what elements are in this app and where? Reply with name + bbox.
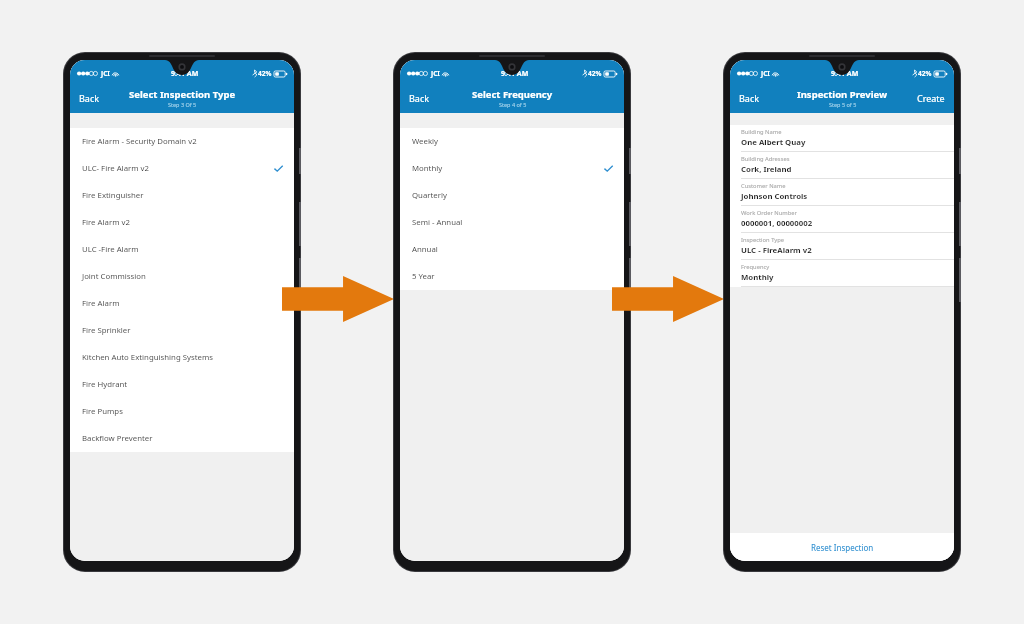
- staticText: Building Name: [741, 128, 782, 136]
- staticText: Fire Hydrant: [82, 379, 128, 390]
- button[interactable]: ULC -Fire Alarm: [70, 236, 294, 263]
- button[interactable]: 5 Year: [400, 263, 624, 290]
- staticText: 42%: [918, 69, 932, 78]
- button[interactable]: Fire Pumps: [70, 398, 294, 425]
- button[interactable]: Fire Extinguisher: [70, 182, 294, 209]
- staticText: Fire Alarm: [82, 298, 120, 309]
- staticText: Reset Inspection: [811, 542, 874, 553]
- button[interactable]: Weekly: [400, 128, 624, 155]
- button[interactable]: Kitchen Auto Extinguishing Systems: [70, 344, 294, 371]
- button[interactable]: Fire Alarm - Security Domain v2: [70, 128, 294, 155]
- staticText: Step 3 Of 5: [168, 101, 197, 108]
- staticText: ULC- Fire Alarm v2: [82, 163, 149, 174]
- button[interactable]: Building Name: [730, 125, 954, 152]
- staticText: JCI: [431, 69, 440, 78]
- staticText: ULC -Fire Alarm: [82, 244, 139, 255]
- staticText: Johnson Controls: [741, 191, 808, 202]
- staticText: Kitchen Auto Extinguishing Systems: [82, 352, 213, 363]
- staticText: Fire Alarm - Security Domain v2: [82, 136, 197, 147]
- staticText: Quarterly: [412, 190, 447, 201]
- staticText: Frequency: [741, 263, 770, 271]
- button[interactable]: Inspection Type: [730, 233, 954, 260]
- staticText: ULC - FireAlarm v2: [741, 245, 812, 256]
- button[interactable]: Fire Alarm: [70, 290, 294, 317]
- button[interactable]: Reset Inspection: [730, 533, 954, 561]
- button[interactable]: Back: [70, 88, 108, 108]
- button[interactable]: Customer Name: [730, 179, 954, 206]
- staticText: Building Adresses: [741, 155, 790, 163]
- staticText: One Albert Quay: [741, 137, 806, 148]
- button[interactable]: Monthly: [400, 155, 624, 182]
- button[interactable]: Frequency: [730, 260, 954, 287]
- staticText: Backflow Preventer: [82, 433, 153, 444]
- staticText: 42%: [258, 69, 272, 78]
- button[interactable]: Back: [730, 88, 768, 108]
- button[interactable]: Annual: [400, 236, 624, 263]
- staticText: 9:41 AM: [171, 69, 199, 79]
- staticText: Fire Pumps: [82, 406, 123, 417]
- staticText: Monthly: [741, 272, 774, 283]
- button[interactable]: Semi - Annual: [400, 209, 624, 236]
- staticText: 42%: [588, 69, 602, 78]
- button[interactable]: Backflow Preventer: [70, 425, 294, 452]
- staticText: 9:41 AM: [831, 69, 859, 79]
- staticText: Fire Alarm v2: [82, 217, 130, 228]
- button[interactable]: Joint Commission: [70, 263, 294, 290]
- staticText: Back: [739, 92, 760, 104]
- staticText: JCI: [761, 69, 770, 78]
- staticText: Back: [409, 92, 430, 104]
- staticText: Inspection Type: [741, 236, 785, 244]
- staticText: Semi - Annual: [412, 217, 463, 228]
- staticText: Fire Sprinkler: [82, 325, 131, 336]
- staticText: 9:41 AM: [501, 69, 529, 79]
- button[interactable]: Building Adresses: [730, 152, 954, 179]
- staticText: Work Order Number: [741, 209, 797, 217]
- button[interactable]: Create: [909, 88, 954, 108]
- staticText: Cork, Ireland: [741, 164, 792, 175]
- staticText: Select Inspection Type: [129, 88, 236, 101]
- staticText: Weekly: [412, 136, 439, 147]
- staticText: Back: [79, 92, 100, 104]
- staticText: Customer Name: [741, 182, 786, 190]
- staticText: Joint Commission: [82, 271, 146, 282]
- button[interactable]: Fire Alarm v2: [70, 209, 294, 236]
- staticText: 0000001, 00000002: [741, 218, 813, 229]
- staticText: Select Frequency: [472, 88, 553, 101]
- staticText: Step 4 of 5: [499, 101, 527, 108]
- staticText: Annual: [412, 244, 438, 255]
- staticText: 5 Year: [412, 271, 435, 282]
- staticText: Fire Extinguisher: [82, 190, 144, 201]
- button[interactable]: Back: [400, 88, 438, 108]
- button[interactable]: Fire Sprinkler: [70, 317, 294, 344]
- staticText: Create: [917, 92, 945, 104]
- button[interactable]: Quarterly: [400, 182, 624, 209]
- staticText: Inspection Preview: [797, 88, 888, 101]
- button[interactable]: Fire Hydrant: [70, 371, 294, 398]
- staticText: Step 5 of 5: [829, 101, 857, 108]
- button[interactable]: ULC- Fire Alarm v2: [70, 155, 294, 182]
- staticText: JCI: [101, 69, 110, 78]
- button[interactable]: Work Order Number: [730, 206, 954, 233]
- staticText: Monthly: [412, 163, 443, 174]
